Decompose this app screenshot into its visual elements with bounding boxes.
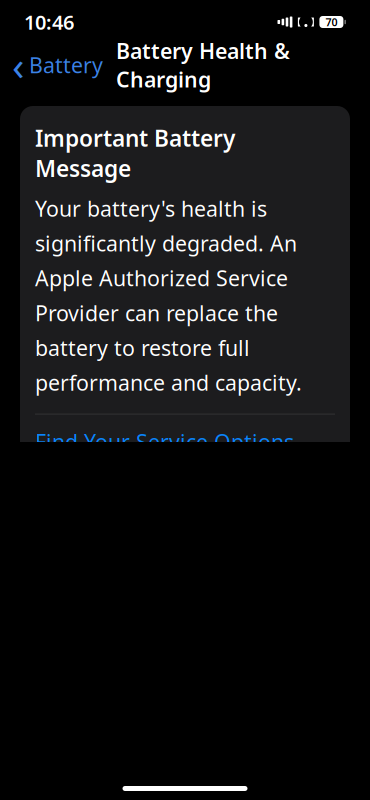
staticText: Important Battery Message [35,123,235,183]
button[interactable]: ‹ [0,46,107,84]
staticText: 70 [325,15,337,29]
button[interactable]: Find Your Service Options [35,414,335,469]
staticText: 10:46 [24,9,74,35]
staticText: Battery [29,51,103,79]
staticText: Your battery is currently supporting nor… [33,737,324,789]
staticText: ‹ [12,38,24,91]
staticText: Find Your Service Options [35,427,294,456]
staticText: Battery Health & Charging [116,37,290,93]
staticText: Your battery's health is significantly d… [35,194,302,397]
